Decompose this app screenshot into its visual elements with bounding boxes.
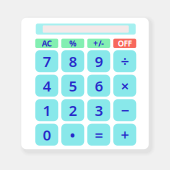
button[interactable]: 7	[35, 50, 58, 72]
staticText: +	[121, 125, 129, 144]
staticText: ÷	[121, 51, 129, 71]
staticText: AC	[42, 38, 52, 49]
staticText: 0	[43, 125, 51, 144]
staticText: 2	[69, 100, 77, 120]
button[interactable]: 9	[87, 50, 110, 72]
button[interactable]: 0	[35, 124, 58, 146]
button[interactable]: 8	[61, 50, 84, 72]
staticText: 9	[95, 51, 103, 71]
staticText: 5	[69, 76, 77, 95]
button[interactable]: −	[113, 99, 136, 121]
button[interactable]: ×	[113, 75, 136, 97]
staticText: +/-	[93, 38, 104, 49]
button[interactable]: AC	[35, 39, 58, 48]
staticText: 3	[95, 100, 103, 120]
button[interactable]: •	[61, 124, 84, 146]
button[interactable]: %	[61, 39, 84, 48]
staticText: •	[70, 125, 76, 144]
staticText: 4	[43, 76, 51, 95]
button[interactable]: 1	[35, 99, 58, 121]
staticText: −	[121, 100, 129, 120]
button[interactable]: 4	[35, 75, 58, 97]
button[interactable]: 3	[87, 99, 110, 121]
button[interactable]: =	[87, 124, 110, 146]
staticText: 8	[69, 51, 77, 71]
button[interactable]: OFF	[113, 39, 136, 48]
staticText: %	[69, 38, 76, 49]
staticText: ×	[121, 76, 129, 95]
staticText: 7	[43, 51, 51, 71]
button[interactable]: 6	[87, 75, 110, 97]
button[interactable]: 5	[61, 75, 84, 97]
staticText: =	[95, 125, 103, 144]
staticText: 1	[43, 100, 51, 120]
button[interactable]: +/-	[87, 39, 110, 48]
button[interactable]: +	[113, 124, 136, 146]
staticText: OFF	[118, 38, 132, 49]
button[interactable]: ÷	[113, 50, 136, 72]
staticText: 6	[95, 76, 103, 95]
button[interactable]: 2	[61, 99, 84, 121]
